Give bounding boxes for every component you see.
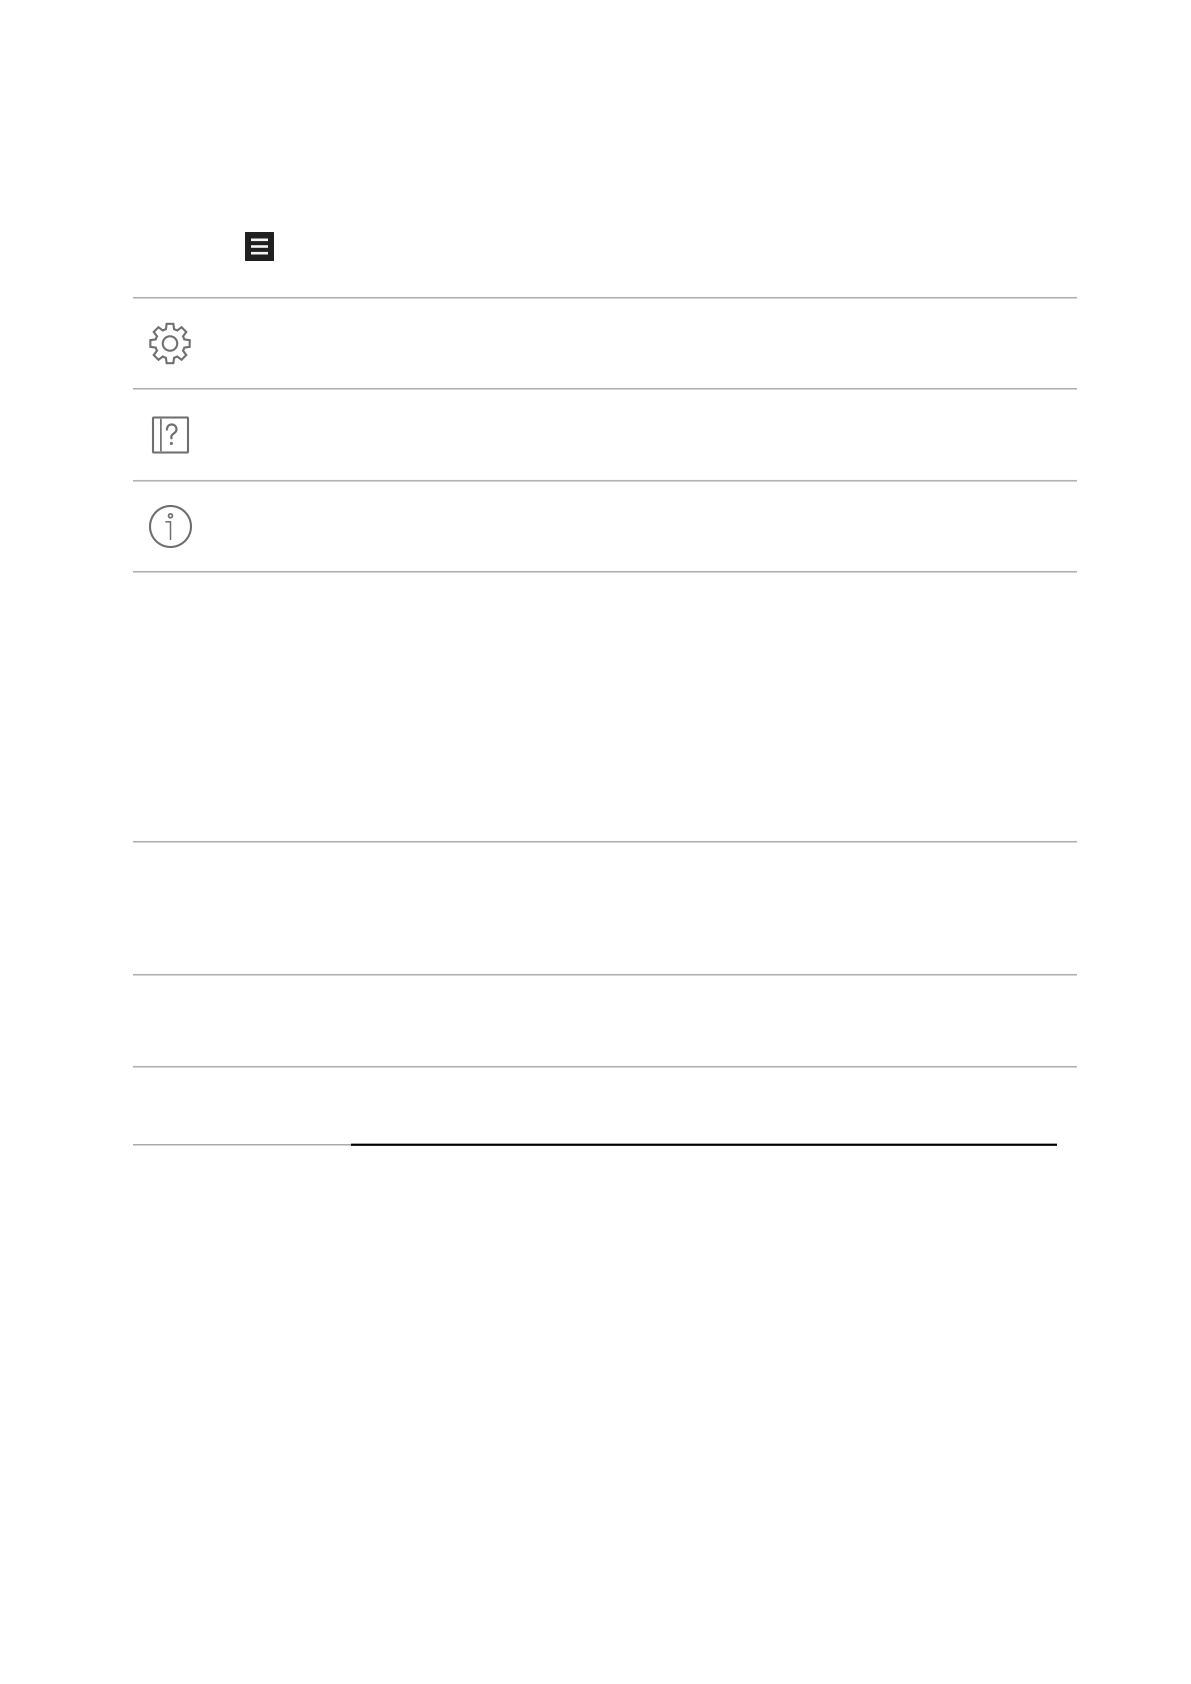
button[interactable]: Menu <box>245 232 274 261</box>
button[interactable]: About <box>133 481 1077 572</box>
button[interactable]: Manual <box>133 389 1077 481</box>
button[interactable]: Settings <box>133 298 1077 389</box>
